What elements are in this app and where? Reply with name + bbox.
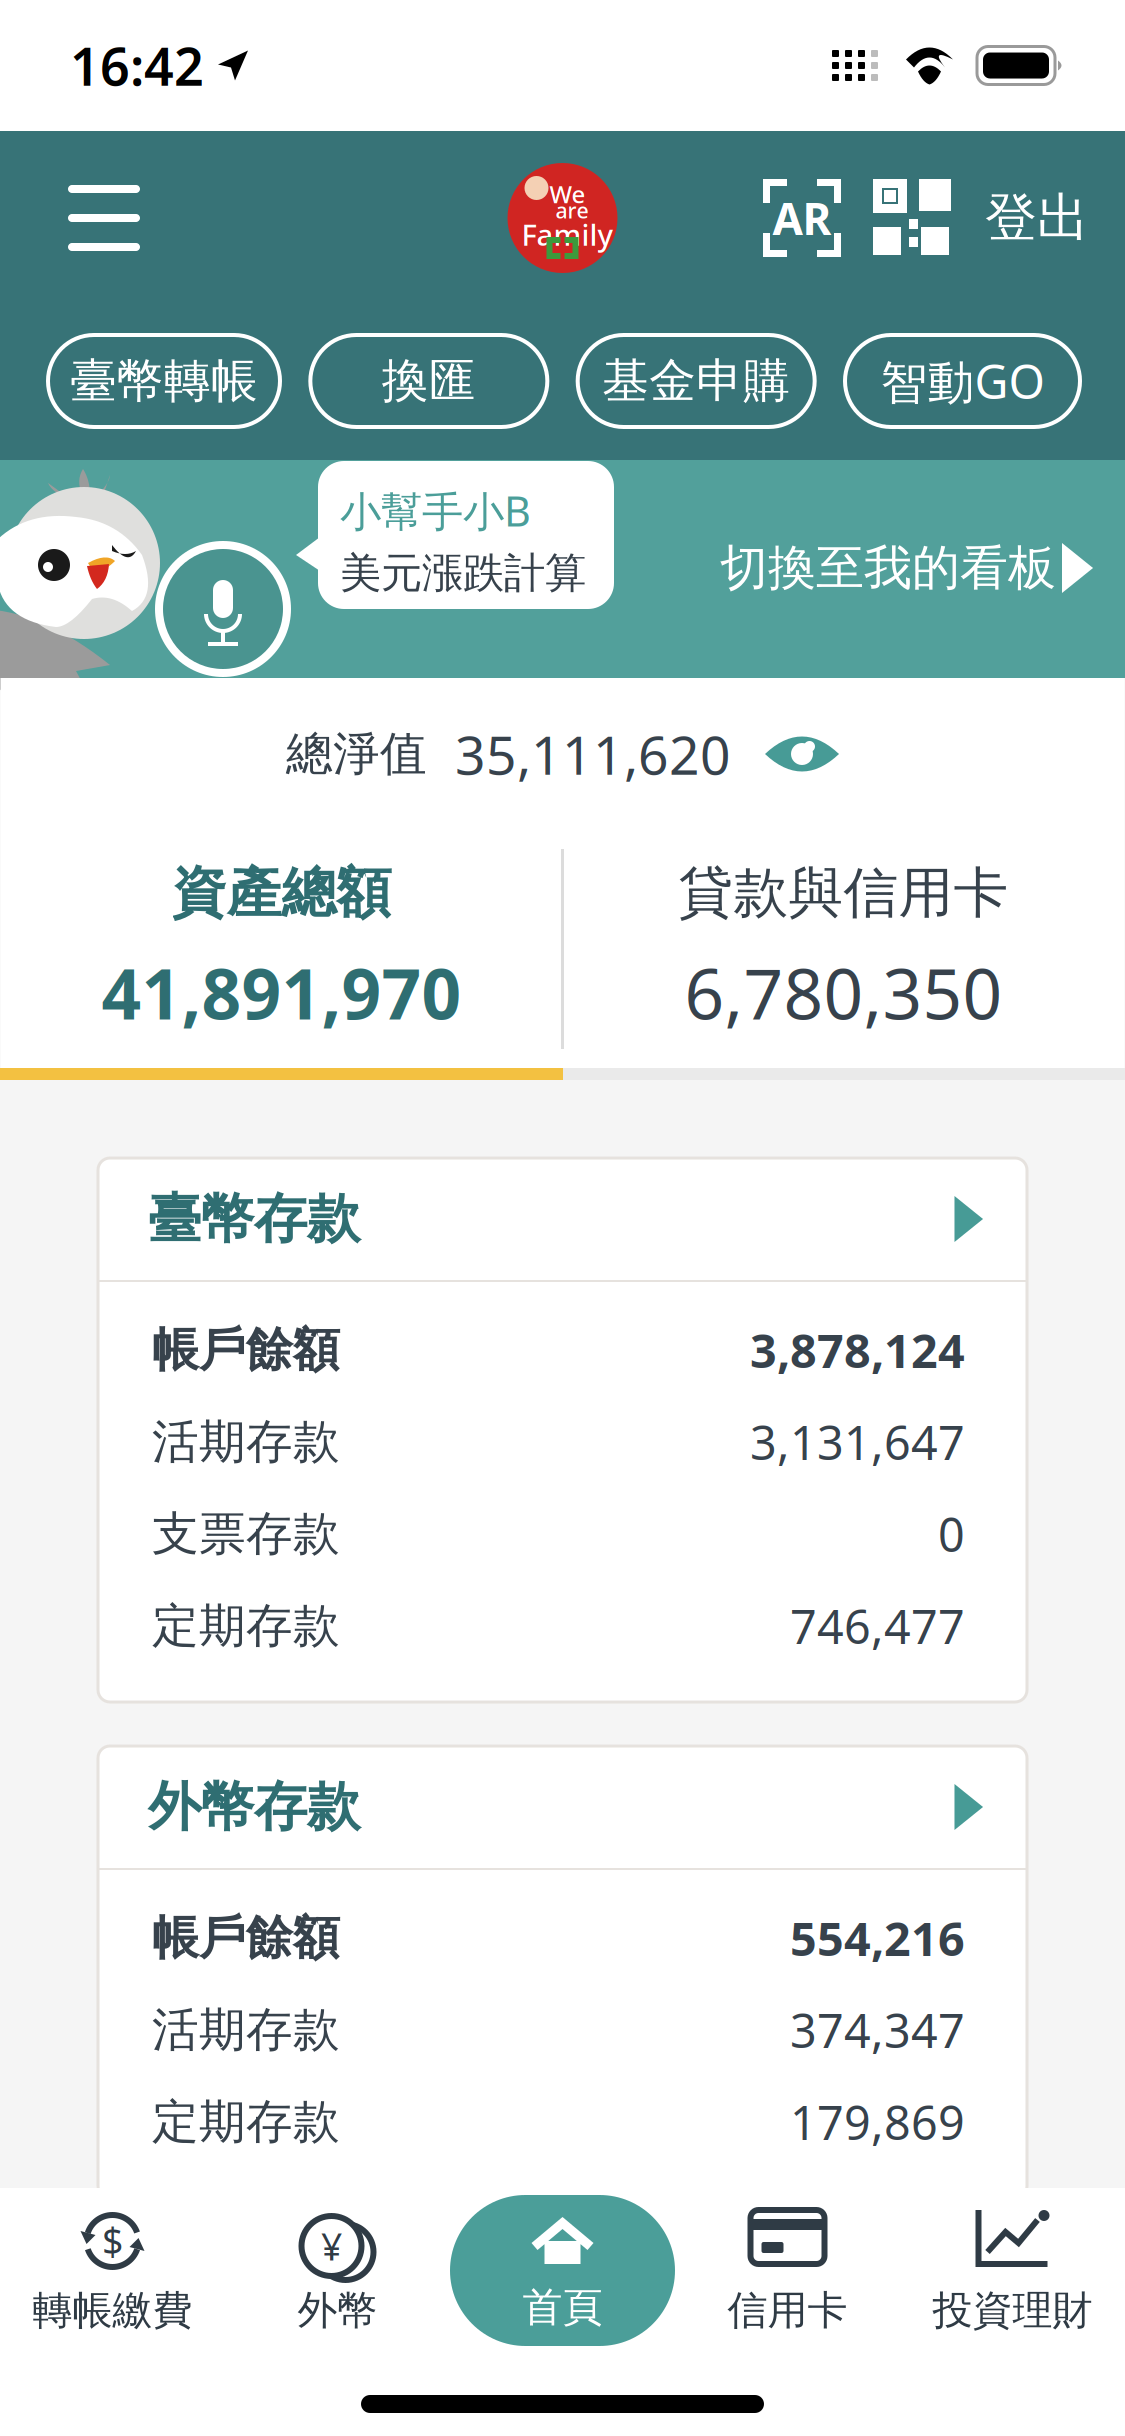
staticText: 智動GO bbox=[880, 350, 1044, 412]
staticText: 35,111,620 bbox=[455, 719, 731, 789]
staticText: 小幫手小B bbox=[340, 483, 531, 538]
staticText: Family bbox=[521, 215, 612, 254]
staticText: 554,216 bbox=[790, 1907, 965, 1969]
button[interactable]: 切換至我的看板 bbox=[720, 535, 1093, 601]
button[interactable]: 智動GO bbox=[845, 335, 1080, 427]
staticText: 貸款與信用卡 bbox=[678, 859, 1008, 926]
button[interactable]: 換匯 bbox=[310, 335, 547, 427]
staticText: 外幣 bbox=[297, 2286, 377, 2335]
staticText: AR bbox=[772, 189, 831, 247]
button[interactable]: 基金申購 bbox=[578, 335, 815, 427]
staticText: 374,347 bbox=[790, 1999, 965, 2061]
staticText: 切換至我的看板 bbox=[720, 538, 1056, 597]
staticText: 信用卡 bbox=[727, 2286, 847, 2335]
staticText: ¥ bbox=[321, 2221, 342, 2271]
staticText: 總淨值 bbox=[286, 725, 427, 783]
button[interactable]: Voice assistant bbox=[155, 541, 291, 677]
staticText: 746,477 bbox=[790, 1595, 965, 1657]
staticText: 美元漲跌計算 bbox=[340, 548, 586, 599]
button[interactable]: ¥ bbox=[225, 2188, 450, 2353]
staticText: 帳戶餘額 bbox=[152, 1321, 340, 1379]
staticText: 帳戶餘額 bbox=[152, 1909, 340, 1967]
staticText: are bbox=[555, 196, 588, 224]
staticText: 定期存款 bbox=[152, 2093, 340, 2151]
staticText: 0 bbox=[938, 1503, 965, 1565]
staticText: 41,891,970 bbox=[101, 946, 461, 1039]
staticText: 活期存款 bbox=[152, 2001, 340, 2059]
button[interactable]: 外幣存款 bbox=[98, 1746, 1027, 1868]
staticText: 首頁 bbox=[522, 2283, 602, 2332]
button[interactable]: 臺幣存款 bbox=[98, 1158, 1027, 1280]
button[interactable]: AR bbox=[765, 131, 839, 305]
button[interactable]: QR code scanner bbox=[877, 131, 947, 305]
staticText: 換匯 bbox=[382, 352, 476, 410]
button[interactable]: Menu bbox=[68, 131, 140, 305]
staticText: 資產總額 bbox=[171, 859, 391, 926]
staticText: 外幣存款 bbox=[148, 1774, 360, 1840]
staticText: 登出 bbox=[985, 186, 1089, 250]
staticText: 基金申購 bbox=[602, 352, 790, 410]
button[interactable]: Hide balance bbox=[765, 733, 839, 775]
staticText: 定期存款 bbox=[152, 1597, 340, 1655]
button[interactable]: 登出 bbox=[985, 131, 1089, 305]
button[interactable]: 首頁 bbox=[450, 2188, 675, 2353]
staticText: 臺幣存款 bbox=[148, 1186, 360, 1252]
button[interactable]: 投資理財 bbox=[900, 2188, 1125, 2353]
button[interactable]: 臺幣轉帳 bbox=[48, 335, 280, 427]
staticText: 3,131,647 bbox=[750, 1411, 965, 1473]
staticText: 支票存款 bbox=[152, 1505, 340, 1563]
staticText: 6,780,350 bbox=[684, 946, 1002, 1039]
staticText: 3,878,124 bbox=[750, 1319, 965, 1381]
staticText: 投資理財 bbox=[932, 2286, 1092, 2335]
staticText: 16:42 bbox=[70, 31, 204, 100]
staticText: We bbox=[549, 178, 585, 210]
staticText: 轉帳繳費 bbox=[32, 2286, 192, 2335]
staticText: $ bbox=[102, 2216, 123, 2266]
staticText: 臺幣轉帳 bbox=[70, 352, 258, 410]
button[interactable]: 信用卡 bbox=[675, 2188, 900, 2353]
staticText: 179,869 bbox=[790, 2091, 965, 2153]
button[interactable]: $ bbox=[0, 2188, 225, 2353]
staticText: 活期存款 bbox=[152, 1413, 340, 1471]
